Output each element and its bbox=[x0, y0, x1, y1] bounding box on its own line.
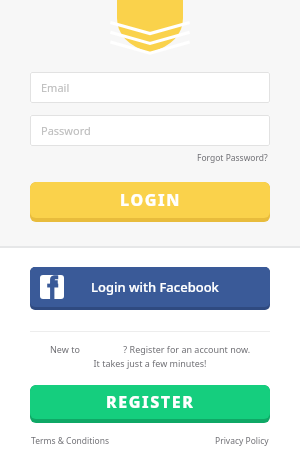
staticText: Forgot Password? bbox=[197, 152, 268, 164]
staticText: New to bbox=[50, 343, 83, 355]
button[interactable]: Login with Facebook bbox=[30, 267, 270, 310]
staticText: Email bbox=[41, 80, 70, 95]
button[interactable]: Email bbox=[30, 72, 270, 103]
staticText: Password bbox=[41, 123, 91, 138]
button[interactable]: Password bbox=[30, 115, 270, 146]
staticText: REGISTER bbox=[106, 391, 195, 413]
staticText: Login with Facebook bbox=[91, 278, 219, 296]
staticText: Privacy Policy bbox=[215, 435, 269, 447]
button[interactable]: LOGIN bbox=[30, 182, 270, 222]
button[interactable]: Forgot Password? bbox=[195, 150, 270, 166]
staticText: LOGIN bbox=[120, 189, 181, 211]
button[interactable]: Privacy Policy bbox=[214, 434, 270, 448]
button[interactable]: Terms & Conditions bbox=[30, 434, 111, 448]
staticText: ? Register for an account now. bbox=[121, 343, 251, 355]
button[interactable]: REGISTER bbox=[30, 385, 270, 423]
staticText: It takes just a few minutes! bbox=[30, 357, 270, 369]
staticText: Terms & Conditions bbox=[31, 435, 110, 447]
